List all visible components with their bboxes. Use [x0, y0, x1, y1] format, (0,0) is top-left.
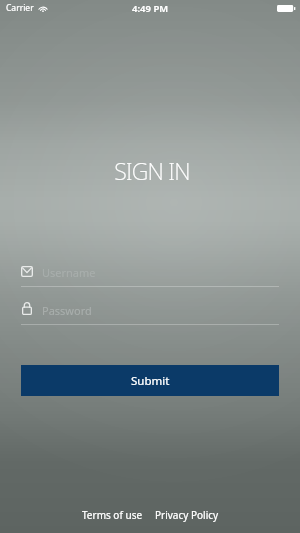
staticText: Username: [42, 265, 96, 280]
other: Battery: [277, 5, 295, 12]
button[interactable]: Submit: [21, 365, 279, 396]
staticText: SIGN IN: [2, 155, 300, 186]
button[interactable]: Password: [21, 302, 279, 318]
button[interactable]: Username: [21, 264, 279, 280]
staticText: 4:49 PM: [132, 2, 169, 15]
staticText: Password: [42, 303, 92, 318]
button[interactable]: Privacy Policy: [152, 506, 222, 524]
button[interactable]: Terms of use: [79, 506, 146, 524]
staticText: Carrier: [6, 2, 34, 14]
staticText: Submit: [131, 373, 170, 389]
